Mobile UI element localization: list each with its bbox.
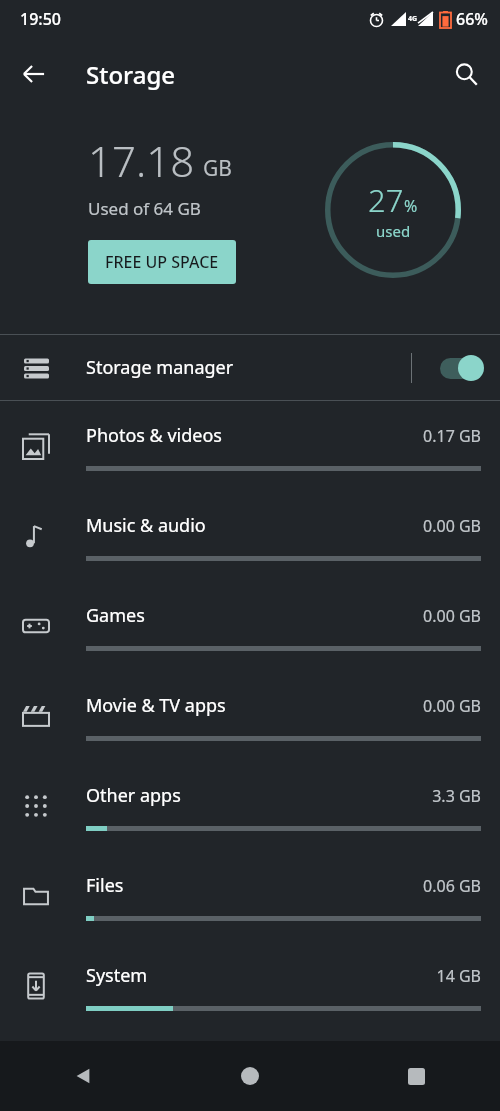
button[interactable]: Back (10, 50, 58, 98)
staticText: 17.18 (88, 132, 195, 189)
button[interactable]: Back (0, 1041, 166, 1111)
button[interactable]: Storage manager (0, 335, 500, 400)
staticText: 3.3 GB (432, 785, 481, 807)
staticText: 66% (456, 8, 488, 30)
staticText: Movie & TV apps (86, 693, 226, 718)
button[interactable]: Home (166, 1041, 333, 1111)
staticText: FREE UP SPACE (105, 251, 219, 273)
button[interactable]: Files (0, 851, 500, 941)
staticText: Music & audio (86, 513, 206, 538)
button[interactable]: Music & audio (0, 491, 500, 581)
staticText: 0.00 GB (423, 515, 481, 537)
staticText: 0.06 GB (423, 875, 481, 897)
button[interactable]: Other apps (0, 761, 500, 851)
button[interactable]: FREE UP SPACE (88, 240, 236, 284)
button[interactable]: System (0, 941, 500, 1031)
staticText: Storage manager (86, 355, 234, 380)
staticText: Games (86, 603, 145, 628)
staticText: 0.17 GB (423, 425, 481, 447)
staticText: Other apps (86, 783, 181, 808)
staticText: Photos & videos (86, 423, 222, 448)
staticText: 0.00 GB (423, 695, 481, 717)
button[interactable]: Games (0, 581, 500, 671)
staticText: used (376, 221, 411, 241)
staticText: % (404, 195, 418, 217)
staticText: 19:50 (20, 8, 61, 30)
staticText: System (86, 963, 148, 988)
staticText: GB (203, 154, 232, 183)
staticText: 4G (408, 14, 418, 24)
staticText: Files (86, 873, 124, 898)
staticText: 27 (368, 179, 404, 221)
button[interactable]: Photos & videos (0, 401, 500, 491)
button[interactable]: Search (442, 50, 490, 98)
staticText: 14 GB (436, 965, 481, 987)
staticText: 0.00 GB (423, 605, 481, 627)
button[interactable]: Movie & TV apps (0, 671, 500, 761)
button[interactable]: Storage manager toggle (440, 355, 484, 381)
staticText: Storage (86, 58, 176, 91)
staticText: Used of 64 GB (88, 197, 201, 220)
button[interactable]: Recent apps (333, 1041, 500, 1111)
